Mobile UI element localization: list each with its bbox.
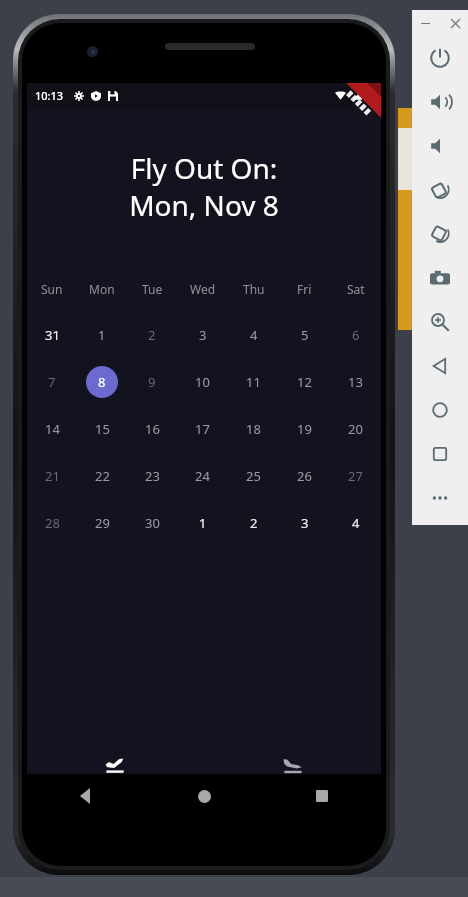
staticText: 28	[45, 514, 60, 532]
staticText: Sat	[347, 281, 365, 297]
staticText: 22	[95, 467, 110, 485]
staticText: 26	[297, 467, 312, 485]
staticText: 8	[98, 373, 106, 391]
button[interactable]: 8	[77, 358, 127, 405]
staticText: 4	[352, 514, 360, 532]
button[interactable]: Close	[446, 14, 464, 32]
staticText: 2	[250, 514, 258, 532]
button[interactable]: 27	[330, 452, 381, 499]
button[interactable]: 31	[27, 311, 77, 358]
staticText: 29	[95, 514, 110, 532]
staticText: Fly Out On	[85, 780, 146, 796]
button[interactable]: 20	[330, 405, 381, 452]
staticText: Tue	[142, 281, 163, 297]
button[interactable]: Zoom	[412, 300, 468, 344]
button[interactable]: Power	[412, 36, 468, 80]
button[interactable]: 3	[177, 311, 228, 358]
button[interactable]: 24	[177, 452, 228, 499]
button[interactable]: 13	[330, 358, 381, 405]
button[interactable]: Back	[27, 774, 145, 818]
staticText: 20	[348, 420, 363, 438]
button[interactable]: 5	[279, 311, 330, 358]
staticText: 25	[246, 467, 261, 485]
staticText: Fly Out On: Mon, Nov 8	[27, 149, 381, 224]
button[interactable]: 29	[77, 499, 127, 546]
button[interactable]: 2	[127, 311, 177, 358]
button[interactable]: Home	[145, 774, 263, 818]
staticText: 23	[145, 467, 160, 485]
button[interactable]: 10	[177, 358, 228, 405]
button[interactable]: 26	[279, 452, 330, 499]
button[interactable]: 19	[279, 405, 330, 452]
staticText: 12	[297, 373, 312, 391]
button[interactable]: 18	[228, 405, 279, 452]
button[interactable]: 22	[77, 452, 127, 499]
button[interactable]: 3	[279, 499, 330, 546]
button[interactable]: Overview	[412, 432, 468, 476]
staticText: 10:13	[35, 88, 64, 103]
button[interactable]: 21	[27, 452, 77, 499]
button[interactable]: 4	[228, 311, 279, 358]
staticText: 3	[199, 326, 207, 344]
button[interactable]: 14	[27, 405, 77, 452]
button[interactable]: More	[412, 476, 468, 520]
staticText: 1	[199, 514, 207, 532]
staticText: Sun	[41, 281, 63, 297]
staticText: 5	[301, 326, 309, 344]
staticText: 2	[148, 326, 156, 344]
button[interactable]: 30	[127, 499, 177, 546]
button[interactable]: Volume down	[412, 124, 468, 168]
button[interactable]: Fly Out On	[27, 748, 204, 806]
staticText: Fly Back On	[260, 780, 326, 796]
staticText: 16	[145, 420, 160, 438]
staticText: 6	[352, 326, 360, 344]
staticText: Wed	[190, 281, 216, 297]
button[interactable]: 16	[127, 405, 177, 452]
staticText: 13	[348, 373, 363, 391]
staticText: 4	[250, 326, 258, 344]
staticText: Thu	[243, 281, 265, 297]
staticText: 17	[195, 420, 210, 438]
button[interactable]: 1	[177, 499, 228, 546]
button[interactable]: 4	[330, 499, 381, 546]
staticText: 15	[95, 420, 110, 438]
staticText: 14	[45, 420, 60, 438]
staticText: 9	[148, 373, 156, 391]
button[interactable]: Volume up	[412, 80, 468, 124]
button[interactable]: Fly Back On	[204, 748, 381, 806]
staticText: Mon	[89, 281, 115, 297]
button[interactable]: Home	[412, 388, 468, 432]
button[interactable]: Minimize	[416, 14, 434, 32]
button[interactable]: Recent apps	[263, 774, 381, 818]
staticText: 7	[48, 373, 56, 391]
button[interactable]: 17	[177, 405, 228, 452]
button[interactable]: 28	[27, 499, 77, 546]
button[interactable]: 6	[330, 311, 381, 358]
staticText: 31	[45, 326, 60, 344]
button[interactable]: 1	[77, 311, 127, 358]
button[interactable]: 2	[228, 499, 279, 546]
button[interactable]: 7	[27, 358, 77, 405]
staticText: 27	[348, 467, 363, 485]
staticText: 11	[246, 373, 261, 391]
button[interactable]: Rotate left	[412, 168, 468, 212]
button[interactable]: Screenshot	[412, 256, 468, 300]
staticText: 21	[45, 467, 60, 485]
staticText: 18	[246, 420, 261, 438]
button[interactable]: 9	[127, 358, 177, 405]
staticText: 19	[297, 420, 312, 438]
button[interactable]: 23	[127, 452, 177, 499]
staticText: 24	[195, 467, 210, 485]
button[interactable]: 15	[77, 405, 127, 452]
staticText: 10	[195, 373, 210, 391]
button[interactable]: 11	[228, 358, 279, 405]
button[interactable]: 25	[228, 452, 279, 499]
staticText: 3	[301, 514, 309, 532]
staticText: Fri	[297, 281, 312, 297]
staticText: 1	[98, 326, 106, 344]
button[interactable]: Back	[412, 344, 468, 388]
button[interactable]: Rotate right	[412, 212, 468, 256]
staticText: 30	[145, 514, 160, 532]
button[interactable]: 12	[279, 358, 330, 405]
